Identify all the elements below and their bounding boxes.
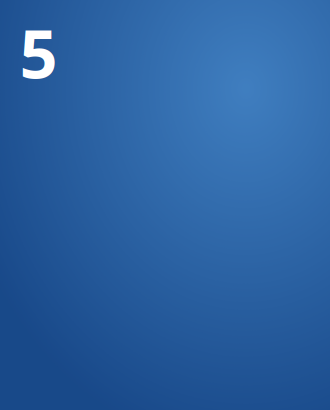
staticText: 5 [19,8,57,97]
